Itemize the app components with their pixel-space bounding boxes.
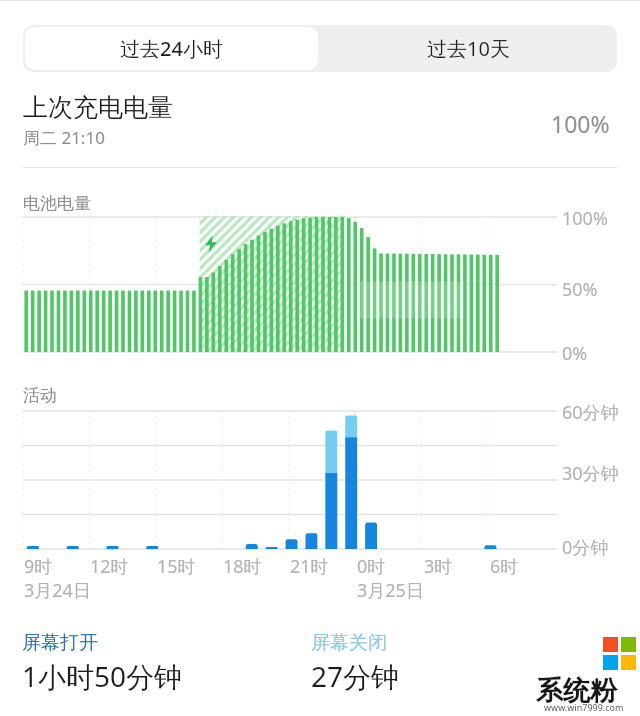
staticText: www.win7999.com (544, 701, 624, 713)
staticText: 电池电量 (23, 193, 91, 214)
button[interactable]: 过去24小时 (25, 27, 318, 70)
staticText: 0分钟 (562, 535, 609, 560)
staticText: 3时 (424, 554, 453, 579)
staticText: 18时 (223, 554, 262, 579)
staticText: 上次充电电量 (23, 92, 173, 123)
staticText: 6时 (490, 554, 519, 579)
staticText: 100% (551, 108, 610, 139)
staticText: 3月24日 (24, 578, 91, 603)
staticText: 屏幕打开 (22, 631, 98, 655)
staticText: 1小时50分钟 (22, 657, 183, 695)
staticText: 30分钟 (562, 461, 619, 486)
staticText: 过去10天 (427, 35, 510, 62)
button[interactable]: 过去10天 (320, 25, 617, 72)
staticText: 9时 (24, 554, 53, 579)
button[interactable]: 屏幕关闭 (311, 631, 400, 695)
staticText: 屏幕关闭 (311, 631, 387, 655)
staticText: 15时 (157, 554, 196, 579)
staticText: 12时 (90, 554, 129, 579)
staticText: 系统粉 (536, 674, 617, 708)
staticText: 0时 (357, 554, 386, 579)
staticText: 0% (562, 341, 588, 366)
staticText: 100% (562, 206, 608, 231)
staticText: 21时 (290, 554, 329, 579)
staticText: 3月25日 (357, 578, 424, 603)
staticText: 活动 (23, 385, 57, 406)
staticText: 60分钟 (562, 400, 619, 425)
staticText: 过去24小时 (120, 35, 223, 62)
staticText: 周二 21:10 (23, 126, 105, 149)
staticText: 27分钟 (311, 657, 400, 695)
button[interactable]: 屏幕打开 (22, 631, 183, 695)
staticText: 50% (562, 277, 598, 302)
